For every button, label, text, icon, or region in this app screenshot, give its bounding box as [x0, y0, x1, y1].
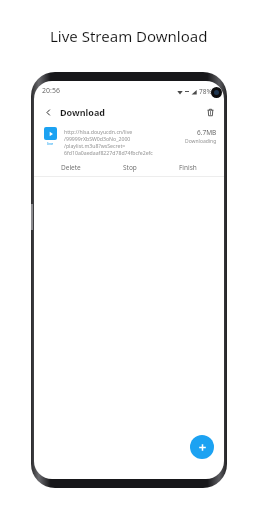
staticText: Stop — [123, 163, 137, 172]
staticText: Download — [60, 106, 105, 118]
staticText: Downloading — [185, 138, 217, 145]
staticText: /99999rXbSW0d3oNo_2000 — [64, 135, 131, 142]
button[interactable]: Delete all — [202, 104, 218, 120]
button[interactable]: Add download — [190, 435, 214, 459]
staticText: Finish — [179, 163, 197, 172]
staticText: Delete — [61, 163, 81, 172]
staticText: 6.7MB — [197, 128, 217, 137]
staticText: 20:56 — [42, 86, 60, 96]
button[interactable]: Stop — [118, 160, 142, 175]
button[interactable]: Back — [40, 104, 56, 120]
staticText: /playlist.m3u8?wsSecret= — [64, 142, 126, 149]
staticText: 78% — [199, 87, 212, 96]
button[interactable]: Finish — [174, 160, 202, 175]
staticText: Live Stream Download — [50, 26, 208, 46]
staticText: live — [47, 141, 54, 146]
staticText: 6fd10a0aedaaf8227d78d74fbcfe2efc — [64, 149, 153, 156]
staticText: http://hlsa.douyucdn.cn/live — [64, 128, 133, 135]
button[interactable]: Delete — [56, 160, 86, 175]
button[interactable]: live — [34, 123, 224, 158]
